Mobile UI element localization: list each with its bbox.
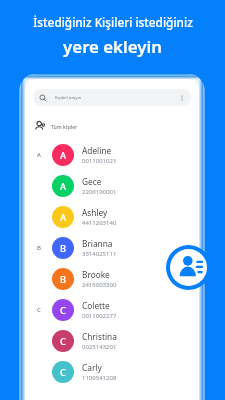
staticText: 0011002277: [82, 312, 117, 320]
staticText: 2415003300: [82, 281, 117, 289]
staticText: A: [60, 180, 67, 193]
staticText: A: [60, 149, 67, 162]
staticText: Colette: [82, 300, 110, 311]
button[interactable]: A: [25, 170, 199, 201]
button[interactable]: C: [25, 294, 199, 325]
button[interactable]: B: [25, 232, 199, 263]
staticText: B: [60, 273, 67, 286]
staticText: C: [60, 335, 66, 348]
button[interactable]: C: [25, 325, 199, 356]
staticText: 1100541208: [82, 374, 117, 382]
staticText: A: [37, 151, 41, 159]
button[interactable]: Add contact: [170, 249, 207, 286]
staticText: yere ekleyin: [63, 35, 162, 58]
staticText: 0025143201: [82, 343, 117, 351]
button[interactable]: C: [25, 356, 199, 387]
staticText: B: [60, 242, 67, 255]
staticText: İstediğiniz Kişileri istediğiniz: [33, 14, 193, 30]
staticText: Adeline: [82, 145, 112, 156]
staticText: Gece: [82, 176, 102, 187]
button[interactable]: Tüm kişiler: [34, 119, 199, 133]
staticText: A: [60, 211, 67, 224]
staticText: Ashley: [82, 207, 108, 218]
staticText: Brianna: [82, 238, 113, 249]
staticText: 2200100001: [82, 188, 117, 196]
button[interactable]: A: [25, 139, 199, 170]
staticText: B: [37, 244, 41, 252]
staticText: C: [60, 304, 66, 317]
staticText: Christina: [82, 331, 117, 342]
staticText: 3314025111: [82, 250, 117, 258]
staticText: 0011001021: [82, 157, 117, 165]
button[interactable]: B: [25, 263, 199, 294]
button[interactable]: A: [25, 201, 199, 232]
staticText: Brooke: [82, 269, 110, 280]
button[interactable]: Kişileri arayın: [33, 89, 191, 106]
staticText: C: [60, 366, 66, 379]
staticText: 4411203140: [82, 219, 117, 227]
staticText: C: [37, 306, 41, 314]
staticText: Carly: [82, 362, 102, 373]
staticText: Kişileri arayın: [55, 95, 82, 101]
staticText: Tüm kişiler: [51, 123, 78, 130]
